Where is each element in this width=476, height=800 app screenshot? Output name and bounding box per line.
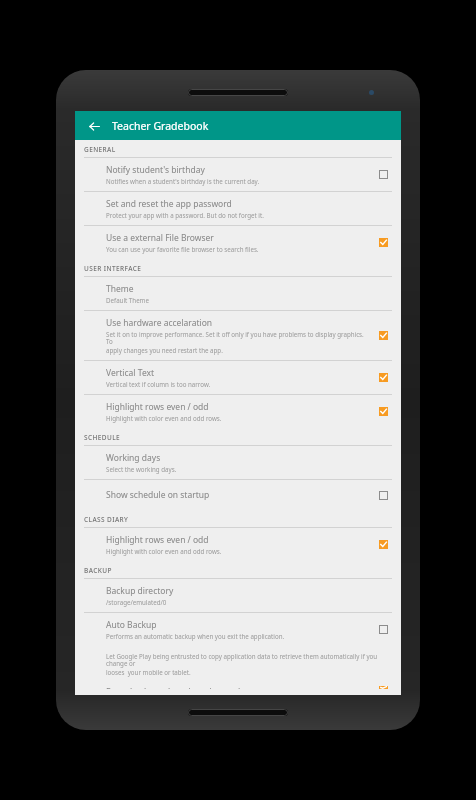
staticText: Performs an automatic backup when you ex…	[106, 632, 285, 640]
other: Toggle	[378, 330, 389, 341]
button[interactable]: Set and reset the app password	[75, 192, 401, 225]
staticText: /storage/emulated/0	[106, 598, 167, 606]
staticText: Default Theme	[106, 296, 149, 304]
staticText: Use a external File Browser	[106, 232, 214, 244]
staticText: Highlight rows even / odd	[106, 534, 209, 546]
staticText: Vertical text if column is too narrow.	[106, 380, 211, 388]
staticText: Force backup when data changed	[106, 686, 241, 689]
staticText: Protect your app with a password. But do…	[106, 211, 264, 219]
button[interactable]: Backup directory	[75, 579, 401, 612]
staticText: Working days	[106, 452, 161, 464]
staticText: GENERAL	[84, 145, 116, 154]
staticText: apply changes you need restart the app.	[106, 346, 223, 354]
other: Toggle	[378, 490, 389, 501]
other: Toggle	[378, 624, 389, 635]
staticText: Auto Backup	[106, 619, 157, 631]
other: Toggle	[378, 406, 389, 417]
staticText: Highlight rows even / odd	[106, 401, 209, 413]
other: Toggle	[378, 169, 389, 180]
button[interactable]: Use hardware accelaration	[75, 311, 401, 360]
staticText: SCHEDULE	[84, 433, 121, 442]
staticText: Highlight with color even and odd rows.	[106, 547, 222, 555]
staticText: looses your mobile or tablet.	[106, 668, 191, 676]
button[interactable]: Theme	[75, 277, 401, 310]
button[interactable]: Use a external File Browser	[75, 226, 401, 259]
staticText: Backup directory	[106, 585, 174, 597]
staticText: Theme	[106, 283, 134, 295]
staticText: You can use your favorite file browser t…	[106, 245, 259, 253]
button[interactable]: Highlight rows even / odd	[75, 528, 401, 561]
staticText: Select the working days.	[106, 465, 177, 473]
staticText: Notifies when a student's birthday is th…	[106, 177, 260, 185]
other: Toggle	[378, 372, 389, 383]
staticText: Set it on to improve performance. Set it…	[106, 330, 372, 346]
other: Toggle	[378, 539, 389, 550]
button[interactable]: Auto Backup	[75, 613, 401, 646]
button[interactable]: Notify student's birthday	[75, 158, 401, 191]
button[interactable]: Force backup when data changed	[75, 680, 401, 695]
staticText: Teacher Gradebook	[112, 119, 209, 133]
staticText: Notify student's birthday	[106, 164, 205, 176]
button[interactable]: Show schedule on startup	[75, 480, 401, 510]
other: Toggle	[378, 686, 389, 689]
staticText: Set and reset the app password	[106, 198, 232, 210]
staticText: Let Google Play being entrusted to copy …	[106, 652, 389, 668]
staticText: Show schedule on startup	[106, 489, 210, 501]
staticText: Highlight with color even and odd rows.	[106, 414, 222, 422]
other: Toggle	[378, 237, 389, 248]
staticText: Use hardware accelaration	[106, 317, 213, 329]
button[interactable]: Vertical Text	[75, 361, 401, 394]
staticText: BACKUP	[84, 566, 112, 575]
button[interactable]: Highlight rows even / odd	[75, 395, 401, 428]
staticText: Vertical Text	[106, 367, 155, 379]
staticText: CLASS DIARY	[84, 515, 129, 524]
button[interactable]: Working days	[75, 446, 401, 479]
button[interactable]: Back	[85, 117, 103, 135]
staticText: USER INTERFACE	[84, 264, 142, 273]
